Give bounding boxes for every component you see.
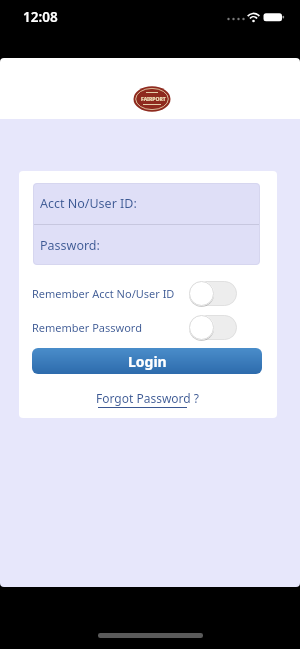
staticText: Password: [40,237,100,254]
button[interactable]: Login [32,348,262,374]
button[interactable]: Forgot Password ? [19,389,276,411]
staticText: Remember Password [32,320,142,335]
staticText: Forgot Password ? [96,390,200,406]
button[interactable] [189,315,237,340]
button[interactable]: Password: [40,225,260,265]
staticText: Acct No/User ID: [40,195,137,212]
staticText: Login [128,352,167,371]
staticText: Remember Acct No/User ID [32,286,175,301]
staticText: 12:08 [23,8,58,26]
button[interactable] [189,281,237,306]
staticText: FAIRPORT [141,96,166,103]
button[interactable]: Acct No/User ID: [40,183,260,224]
